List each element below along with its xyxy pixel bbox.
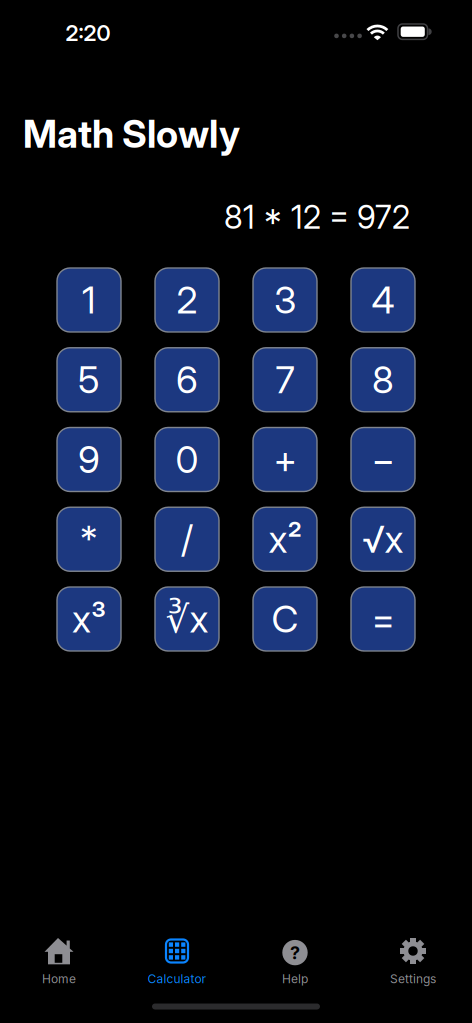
button[interactable]: +	[253, 427, 317, 491]
staticText: 4	[371, 277, 394, 323]
staticText: √x	[362, 517, 403, 562]
staticText: 6	[176, 357, 198, 402]
button[interactable]: Home	[0, 923, 118, 1023]
staticText: 1	[82, 277, 96, 323]
button[interactable]: x²	[253, 507, 317, 571]
button[interactable]: 6	[155, 348, 219, 412]
staticText: Settings	[390, 972, 436, 986]
button[interactable]: ?	[236, 923, 354, 1023]
staticText: −	[371, 437, 394, 482]
button[interactable]: 0	[155, 427, 219, 491]
staticText: x³	[72, 596, 106, 642]
staticText: Math Slowly	[23, 111, 240, 157]
staticText: =	[371, 596, 394, 642]
staticText: 8	[372, 357, 394, 402]
button[interactable]: *	[57, 507, 121, 571]
button[interactable]: √x	[351, 507, 415, 571]
button[interactable]: 7	[253, 348, 317, 412]
staticText: 2	[176, 277, 197, 323]
staticText: 81 * 12 = 972	[224, 198, 410, 236]
button[interactable]: 9	[57, 427, 121, 491]
button[interactable]: 5	[57, 348, 121, 412]
staticText: C	[271, 596, 298, 642]
button[interactable]: ∛x	[155, 587, 219, 651]
staticText: +	[273, 437, 296, 482]
staticText: 7	[275, 357, 294, 402]
staticText: 5	[78, 357, 100, 402]
button[interactable]: =	[351, 587, 415, 651]
button[interactable]: /	[155, 507, 219, 571]
staticText: *	[80, 517, 98, 562]
button[interactable]: 8	[351, 348, 415, 412]
button[interactable]: C	[253, 587, 317, 651]
button[interactable]: −	[351, 427, 415, 491]
staticText: 9	[78, 437, 100, 482]
staticText: ?	[290, 942, 300, 963]
button[interactable]: x³	[57, 587, 121, 651]
staticText: Home	[42, 972, 76, 986]
button[interactable]: 4	[351, 268, 415, 332]
staticText: x²	[268, 517, 301, 562]
button[interactable]: 1	[57, 268, 121, 332]
button[interactable]: Calculator	[118, 923, 236, 1023]
staticText: ∛x	[165, 596, 208, 642]
button[interactable]: 3	[253, 268, 317, 332]
staticText: Help	[282, 972, 308, 986]
button[interactable]: Settings	[354, 923, 472, 1023]
staticText: 0	[175, 437, 198, 482]
staticText: 2:20	[65, 20, 110, 46]
button[interactable]: 2	[155, 268, 219, 332]
staticText: Calculator	[147, 972, 206, 986]
staticText: 3	[274, 277, 296, 323]
staticText: /	[181, 517, 193, 562]
